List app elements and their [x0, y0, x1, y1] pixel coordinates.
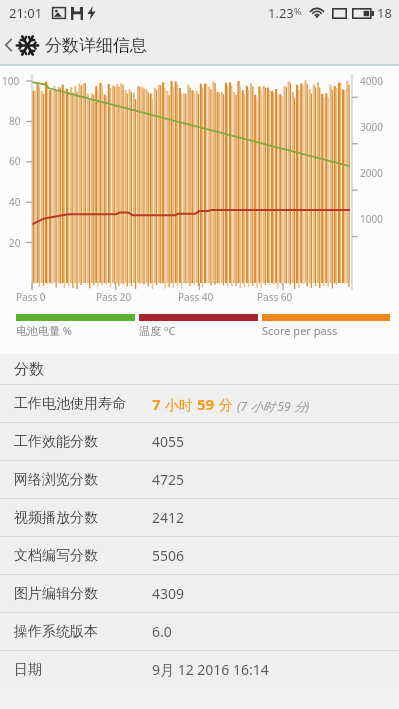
- staticText: 4000: [360, 74, 383, 88]
- staticText: 21:01: [9, 4, 43, 22]
- button[interactable]: 工作电池使用寿命: [0, 385, 399, 422]
- staticText: 网络浏览分数: [14, 471, 98, 489]
- staticText: 4309: [152, 584, 185, 603]
- staticText: 18: [377, 4, 392, 22]
- staticText: 9月 12 2016 16:14: [152, 660, 269, 679]
- button[interactable]: 网络浏览分数: [0, 461, 399, 498]
- staticText: 分: [215, 395, 237, 414]
- staticText: Pass 40: [178, 290, 214, 304]
- staticText: Pass 20: [96, 290, 132, 304]
- staticText: 6.0: [152, 622, 172, 641]
- staticText: 7: [152, 394, 161, 414]
- button[interactable]: 工作效能分数: [0, 423, 399, 460]
- button[interactable]: 操作系统版本: [0, 613, 399, 650]
- staticText: %: [294, 5, 302, 17]
- staticText: 1000: [360, 212, 383, 226]
- staticText: 4055: [152, 432, 185, 451]
- staticText: 1.23: [268, 4, 294, 22]
- staticText: 温度 °C: [139, 323, 176, 338]
- staticText: 小时: [161, 395, 197, 414]
- staticText: 图片编辑分数: [14, 585, 98, 603]
- staticText: 分数: [14, 360, 44, 379]
- staticText: 3000: [360, 120, 383, 134]
- staticText: 工作电池使用寿命: [14, 395, 126, 413]
- staticText: 操作系统版本: [14, 623, 98, 641]
- staticText: 59: [197, 394, 215, 414]
- button[interactable]: 日期: [0, 651, 399, 688]
- staticText: 60: [9, 154, 21, 168]
- staticText: (7 小时 59 分): [237, 398, 310, 414]
- staticText: 5506: [152, 546, 185, 565]
- staticText: Pass 0: [16, 290, 46, 304]
- staticText: 文档编写分数: [14, 547, 98, 565]
- button[interactable]: 文档编写分数: [0, 537, 399, 574]
- staticText: 20: [9, 236, 21, 250]
- button[interactable]: Back: [0, 26, 399, 64]
- staticText: Pass 60: [257, 290, 293, 304]
- staticText: Score per pass: [262, 323, 338, 338]
- staticText: 40: [9, 195, 21, 209]
- staticText: 日期: [14, 661, 42, 679]
- staticText: 电池电量 %: [16, 323, 73, 338]
- staticText: 分数详细信息: [45, 35, 147, 56]
- button[interactable]: 图片编辑分数: [0, 575, 399, 612]
- staticText: 80: [9, 114, 21, 128]
- staticText: 100: [2, 74, 20, 88]
- staticText: 工作效能分数: [14, 433, 98, 451]
- button[interactable]: 视频播放分数: [0, 499, 399, 536]
- staticText: 视频播放分数: [14, 509, 98, 527]
- staticText: 2412: [152, 508, 185, 527]
- staticText: 2000: [360, 166, 383, 180]
- staticText: 4725: [152, 470, 185, 489]
